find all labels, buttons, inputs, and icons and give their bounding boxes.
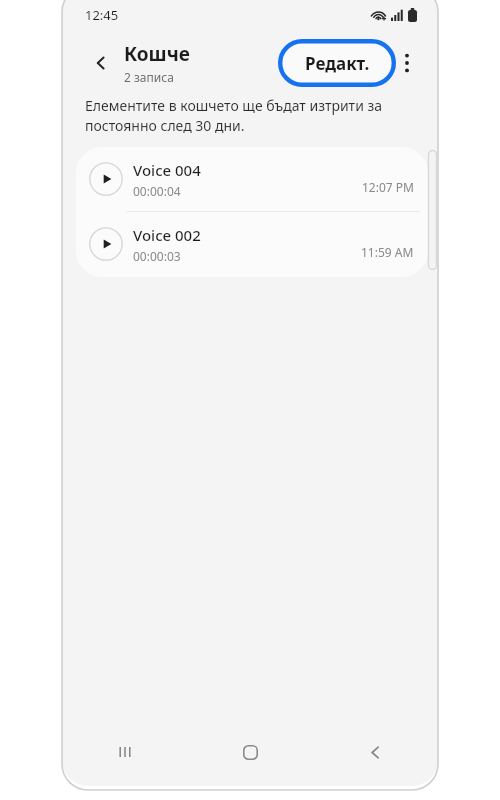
staticText: 00:00:04 (133, 183, 181, 199)
staticText: Редакт. (305, 52, 370, 75)
button[interactable]: Play Voice 004 (89, 162, 123, 196)
staticText: Voice 002 (133, 225, 201, 245)
button[interactable]: Back (313, 732, 438, 772)
button[interactable]: Back (84, 46, 118, 80)
staticText: 12:07 PM (362, 179, 414, 195)
button[interactable]: Play Voice 002 (89, 227, 123, 261)
staticText: Елементите в кошчето ще бъдат изтрити за… (85, 96, 416, 135)
button[interactable]: Home (188, 732, 313, 772)
staticText: 11:59 AM (361, 244, 414, 260)
button[interactable]: More options (390, 46, 424, 80)
staticText: Voice 004 (133, 160, 201, 180)
staticText: 12:45 (85, 6, 119, 24)
button[interactable]: Редакт. (278, 39, 396, 87)
button[interactable]: Recents (62, 732, 188, 772)
staticText: Кошче (124, 41, 190, 67)
staticText: 00:00:03 (133, 248, 181, 264)
button[interactable]: Play Voice 004 (76, 147, 428, 211)
button[interactable]: Play Voice 002 (76, 212, 428, 276)
staticText: 2 записа (124, 69, 174, 85)
